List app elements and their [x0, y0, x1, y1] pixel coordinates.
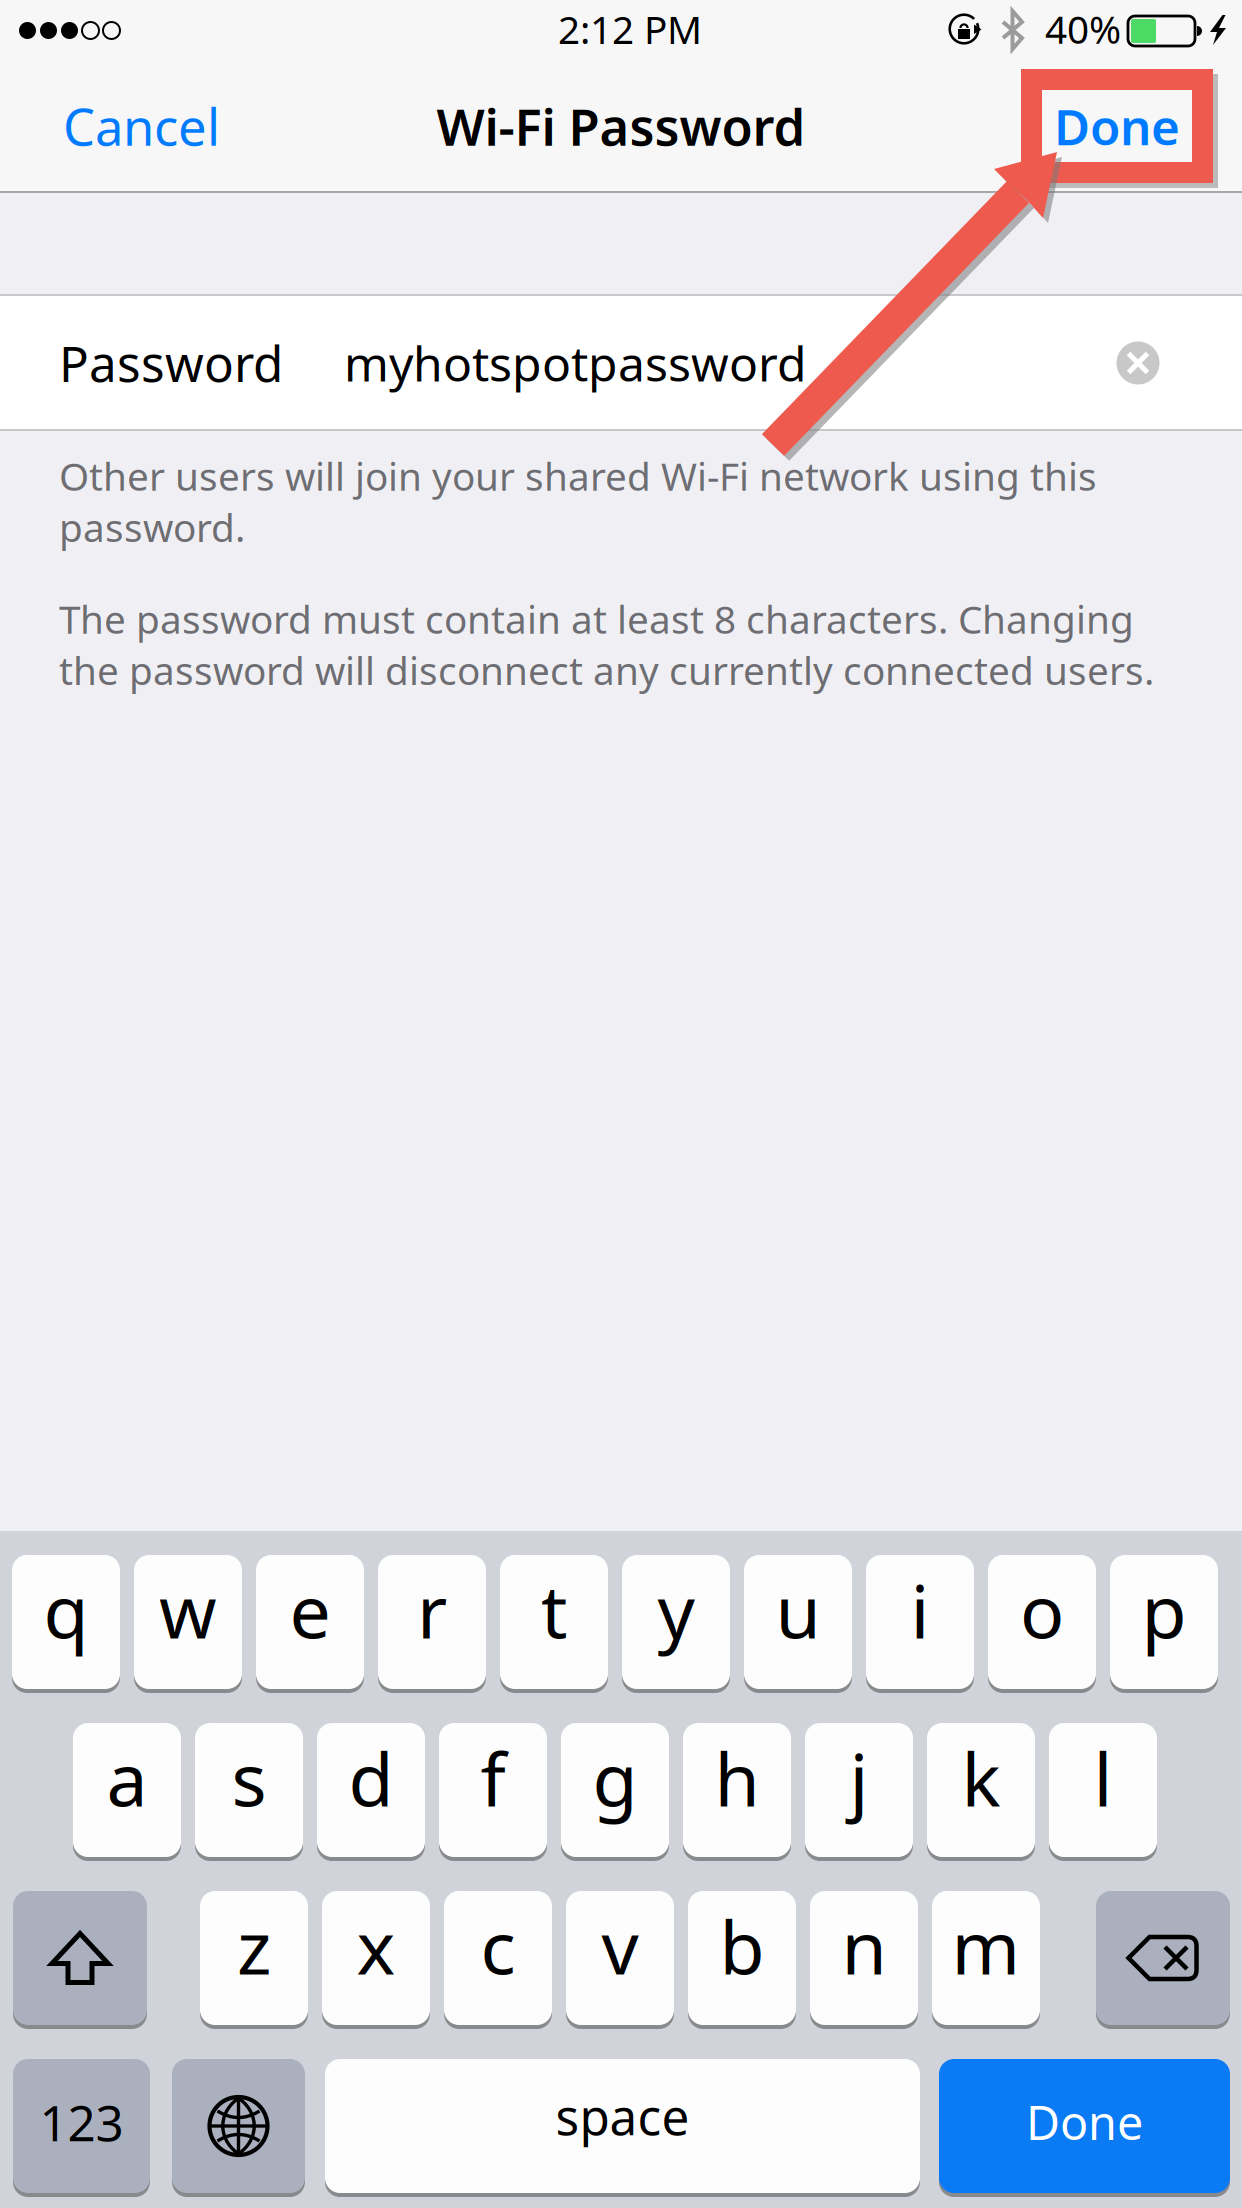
button[interactable]: e [256, 1553, 364, 1691]
staticText: Done [1054, 93, 1180, 159]
button[interactable]: o [988, 1553, 1096, 1691]
staticText: k [961, 1729, 1000, 1827]
staticText: 123 [39, 2089, 123, 2155]
button[interactable]: u [744, 1553, 852, 1691]
staticText: myhotspotpassword [344, 331, 807, 395]
button[interactable]: m [932, 1889, 1040, 2027]
staticText: The password must contain at least 8 cha… [59, 593, 1154, 696]
button[interactable]: Done [1001, 71, 1181, 181]
button[interactable]: j [805, 1721, 913, 1859]
staticText: x [356, 1897, 395, 1995]
staticText: s [231, 1729, 266, 1827]
button[interactable]: y [622, 1553, 730, 1691]
staticText: v [601, 1897, 638, 1995]
staticText: d [348, 1729, 393, 1827]
button[interactable]: v [566, 1889, 674, 2027]
button[interactable]: 123 [13, 2057, 150, 2195]
button[interactable]: f [439, 1721, 547, 1859]
staticText: q [43, 1561, 88, 1659]
button[interactable]: Done [1042, 90, 1192, 162]
button[interactable]: Shift [13, 1889, 147, 2027]
staticText: Done [1026, 2091, 1143, 2153]
button[interactable]: Cancel [63, 71, 233, 181]
staticText: i [910, 1561, 929, 1659]
button[interactable]: b [688, 1889, 796, 2027]
staticText: h [714, 1729, 759, 1827]
staticText: w [159, 1561, 217, 1659]
staticText: b [719, 1897, 764, 1995]
staticText: z [237, 1897, 271, 1995]
staticText: 2:12 PM [558, 3, 702, 55]
button[interactable]: x [322, 1889, 430, 2027]
button[interactable]: k [927, 1721, 1035, 1859]
staticText: a [106, 1729, 147, 1827]
staticText: m [951, 1897, 1020, 1995]
staticText: e [289, 1561, 330, 1659]
button[interactable]: a [73, 1721, 181, 1859]
button[interactable]: l [1049, 1721, 1157, 1859]
button[interactable]: r [378, 1553, 486, 1691]
staticText: Password [59, 330, 283, 395]
button[interactable]: space [325, 2057, 920, 2195]
staticText: u [775, 1561, 820, 1659]
button[interactable]: Next keyboard [172, 2057, 305, 2195]
staticText: Wi-Fi Password [436, 92, 805, 160]
button[interactable]: Delete [1096, 1889, 1230, 2027]
button[interactable]: n [810, 1889, 918, 2027]
staticText: Other users will join your shared Wi-Fi … [59, 450, 1097, 553]
staticText: y [657, 1561, 694, 1659]
button[interactable]: i [866, 1553, 974, 1691]
staticText: f [480, 1729, 505, 1827]
staticText: o [1020, 1561, 1064, 1659]
staticText: p [1141, 1561, 1186, 1659]
staticText: t [541, 1561, 567, 1659]
button[interactable]: t [500, 1553, 608, 1691]
button[interactable]: c [444, 1889, 552, 2027]
staticText: space [555, 2083, 689, 2149]
staticText: Done [1055, 93, 1181, 159]
button[interactable]: h [683, 1721, 791, 1859]
staticText: j [849, 1729, 868, 1827]
staticText: n [841, 1897, 886, 1995]
staticText: r [417, 1561, 447, 1659]
button[interactable]: d [317, 1721, 425, 1859]
button[interactable]: g [561, 1721, 669, 1859]
button[interactable]: Clear text [1098, 323, 1178, 403]
staticText: g [592, 1729, 637, 1827]
button[interactable]: w [134, 1553, 242, 1691]
staticText: Cancel [63, 92, 220, 160]
button[interactable]: Done [939, 2057, 1230, 2195]
button[interactable]: p [1110, 1553, 1218, 1691]
button[interactable]: q [12, 1553, 120, 1691]
button[interactable]: z [200, 1889, 308, 2027]
staticText: l [1093, 1729, 1112, 1827]
button[interactable]: s [195, 1721, 303, 1859]
staticText: c [480, 1897, 515, 1995]
staticText: 40% [1045, 3, 1121, 54]
